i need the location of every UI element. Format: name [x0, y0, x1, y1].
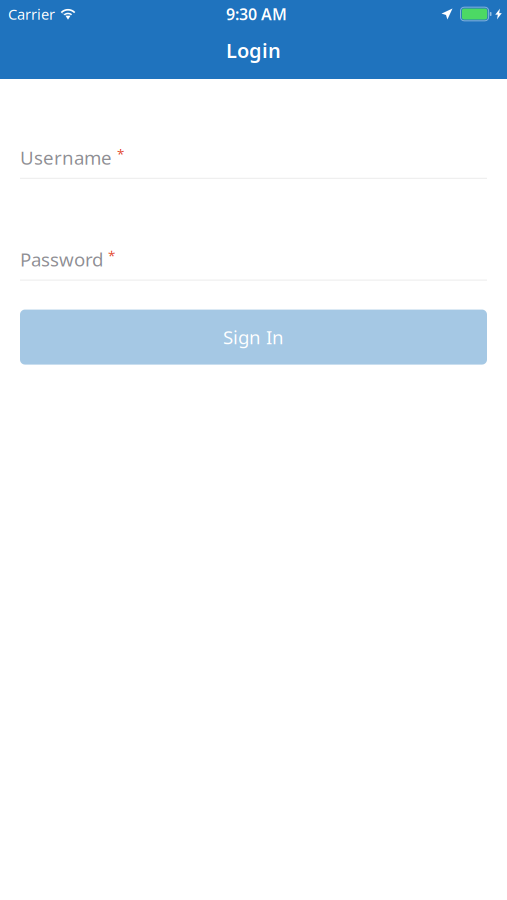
button[interactable]: Username: [20, 145, 487, 179]
staticText: Carrier: [8, 4, 55, 24]
staticText: 9:30 AM: [226, 3, 287, 25]
staticText: *: [117, 145, 124, 163]
button[interactable]: Password: [20, 247, 487, 281]
staticText: Password: [20, 247, 103, 272]
staticText: Login: [226, 37, 281, 64]
staticText: Sign In: [223, 325, 284, 349]
staticText: *: [108, 247, 115, 264]
button[interactable]: Sign In: [20, 310, 487, 365]
staticText: Username: [20, 145, 112, 170]
